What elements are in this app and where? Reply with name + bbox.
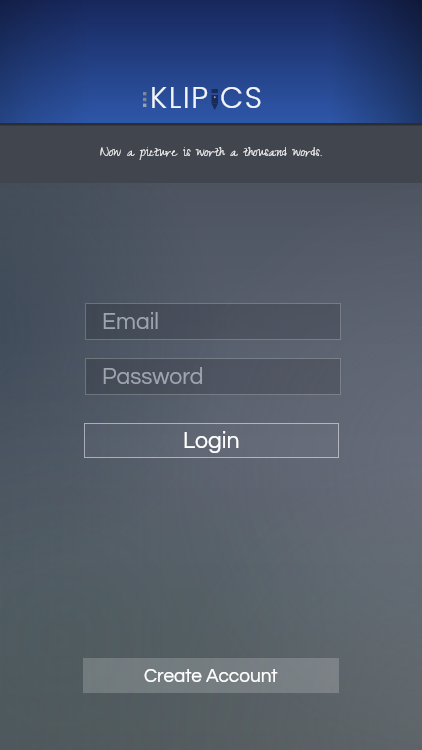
staticText: Email (102, 310, 160, 334)
staticText: Create Account (144, 666, 278, 686)
button[interactable]: Login (84, 423, 339, 458)
staticText: Now a picture is worth a thousand words. (100, 141, 323, 166)
button[interactable]: Password (85, 358, 341, 395)
staticText: KLIP (150, 77, 210, 119)
staticText: Password (102, 365, 204, 389)
button[interactable]: Email (85, 303, 341, 340)
button[interactable]: Create Account (83, 658, 339, 693)
staticText: CS (220, 77, 264, 119)
staticText: Login (183, 429, 240, 453)
